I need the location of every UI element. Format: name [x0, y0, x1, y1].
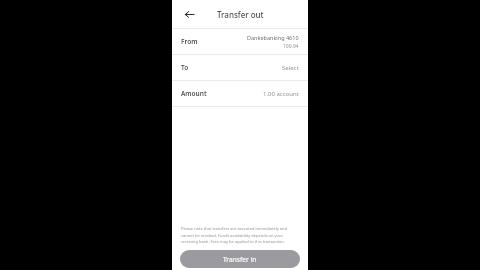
- button[interactable]: From: [172, 29, 308, 54]
- button[interactable]: Amount: [172, 81, 308, 106]
- staticText: Dankebanking 4610: [247, 34, 299, 41]
- staticText: 1,00 account: [263, 90, 299, 98]
- staticText: Amount: [181, 89, 207, 98]
- staticText: Please note that transfers are executed …: [181, 226, 299, 244]
- staticText: Transfer out: [217, 9, 264, 20]
- staticText: 100.94: [283, 43, 299, 50]
- staticText: From: [181, 37, 198, 46]
- button[interactable]: Transfer in: [180, 250, 300, 268]
- staticText: To: [181, 63, 189, 72]
- button[interactable]: Back: [180, 5, 198, 23]
- staticText: Transfer in: [223, 255, 257, 264]
- button[interactable]: To: [172, 55, 308, 80]
- staticText: Select: [282, 64, 299, 72]
